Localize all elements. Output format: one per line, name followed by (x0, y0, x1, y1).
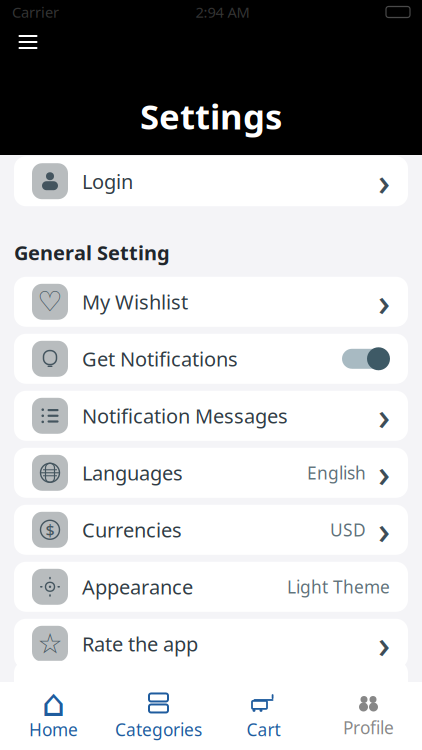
staticText: › (378, 156, 390, 206)
button[interactable]: Menu (6, 24, 50, 60)
staticText: Currencies (82, 516, 182, 543)
button[interactable]: Notification Messages (14, 391, 408, 441)
button[interactable]: $ (14, 505, 408, 555)
button[interactable]: ☆ (14, 619, 408, 669)
staticText: 2:94 AM (195, 2, 249, 22)
staticText: Categories (115, 718, 202, 741)
staticText: ⌂ (41, 682, 65, 724)
staticText: Login (82, 168, 133, 194)
staticText: Profile (343, 716, 394, 739)
staticText: My Wishlist (82, 288, 188, 315)
staticText: ☆ (37, 628, 62, 660)
button[interactable]: ⌂ (1, 686, 106, 746)
button[interactable]: Profile (316, 686, 421, 746)
staticText: Rate the app (82, 630, 198, 657)
staticText: › (378, 448, 390, 498)
staticText: Appearance (82, 573, 193, 600)
staticText: › (378, 505, 390, 555)
button[interactable]: ♡ (14, 277, 408, 327)
staticText: Settings (140, 93, 282, 139)
button[interactable]: Login (14, 156, 408, 206)
staticText: Cart (246, 718, 280, 741)
button[interactable]: Categories (106, 686, 211, 746)
staticText: ♡ (37, 286, 62, 318)
staticText: Home (29, 718, 78, 741)
staticText: › (378, 619, 390, 669)
staticText: Get Notifications (82, 345, 238, 372)
button[interactable]: Get Notifications (14, 334, 408, 384)
staticText: › (378, 391, 390, 441)
staticText: General Setting (14, 239, 170, 266)
staticText: English (307, 461, 366, 484)
button[interactable]: Appearance (14, 562, 408, 612)
button[interactable]: Cart (211, 686, 316, 746)
staticText: Notification Messages (82, 402, 288, 429)
staticText: Carrier (12, 2, 59, 22)
staticText: Languages (82, 459, 183, 486)
button[interactable]: Languages (14, 448, 408, 498)
staticText: USD (330, 518, 366, 541)
staticText: Light Theme (287, 575, 390, 598)
staticText: $ (45, 519, 54, 540)
staticText: › (378, 277, 390, 327)
